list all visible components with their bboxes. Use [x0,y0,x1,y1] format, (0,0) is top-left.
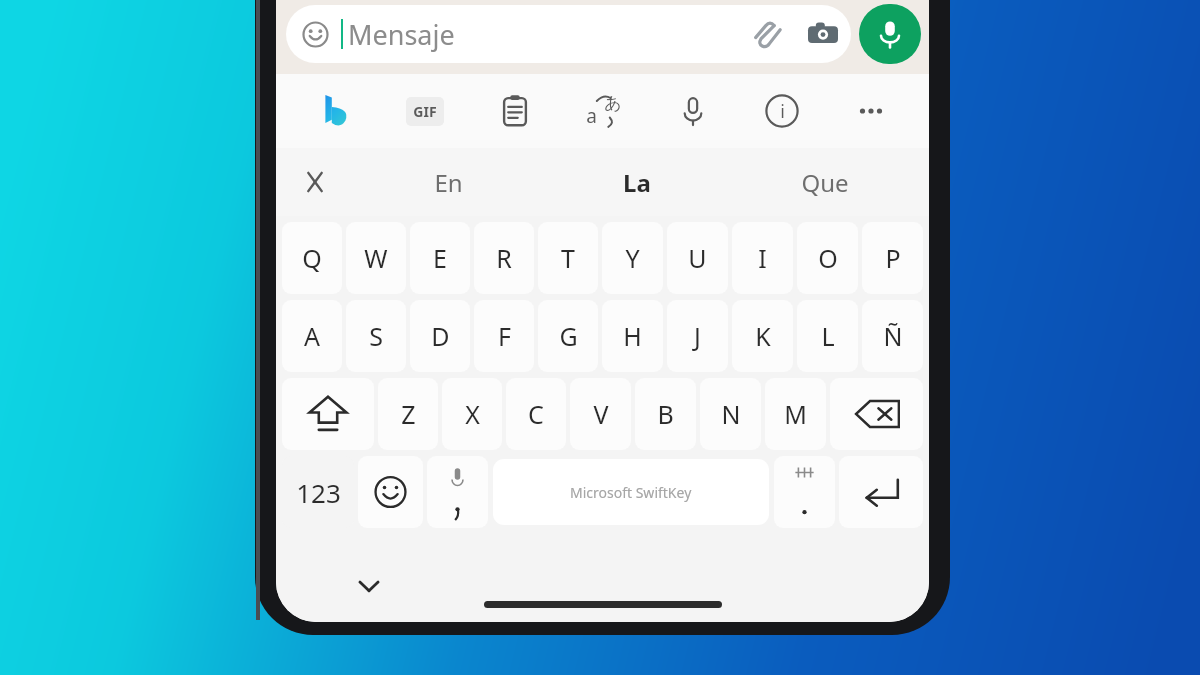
staticText: D [431,319,450,353]
button[interactable]: Voice input [648,74,737,148]
staticText: K [755,319,771,353]
button[interactable]: Hide keyboard [346,563,392,609]
staticText: X [465,397,480,431]
button[interactable]: R [474,222,534,294]
button[interactable]: En [354,148,543,216]
staticText: あ [604,93,622,114]
staticText: I [758,241,767,275]
button[interactable]: Enter [839,456,923,528]
staticText: N [721,397,741,431]
staticText: Z [401,397,416,431]
button[interactable]: Attach [745,12,789,56]
button[interactable]: B [635,378,696,450]
button[interactable]: P [862,222,923,294]
button[interactable]: F [474,300,534,372]
staticText: i [780,99,785,124]
staticText: T [561,241,575,275]
staticText: E [433,241,447,275]
button[interactable]: S [346,300,406,372]
button[interactable]: D [410,300,470,372]
button[interactable]: More options [826,74,915,148]
staticText: U [688,241,707,275]
staticText: Mensaje [348,16,455,53]
button[interactable]: K [732,300,793,372]
staticText: O [818,241,838,275]
button[interactable]: Que [731,148,919,216]
button[interactable]: Collapse [276,148,354,216]
button[interactable]: Voice message [859,4,921,64]
staticText: En [434,166,463,199]
button[interactable]: 123 [282,456,354,528]
button[interactable]: Bing [290,74,380,148]
staticText: H [623,319,642,353]
button[interactable]: Translator [559,74,648,148]
button[interactable]: T [538,222,598,294]
button[interactable]: GIF [380,74,470,148]
button[interactable]: La [543,148,731,216]
staticText: W [364,241,388,275]
button[interactable]: G [538,300,598,372]
button[interactable]: C [506,378,566,450]
staticText: 123 [296,475,341,510]
button[interactable]: V [570,378,631,450]
button[interactable]: Emoji [358,456,423,528]
button[interactable]: Comma [427,456,488,528]
staticText: S [369,319,383,353]
button[interactable]: Ñ [862,300,923,372]
button[interactable]: E [410,222,470,294]
staticText: M [784,397,807,431]
button[interactable]: A [282,300,342,372]
button[interactable]: I [732,222,793,294]
staticText: V [593,397,609,431]
staticText: A [304,319,320,353]
button[interactable]: Z [378,378,438,450]
staticText: a [586,103,597,129]
button[interactable]: Mensaje [286,5,851,63]
button[interactable]: Period [774,456,835,528]
button[interactable]: Info [737,74,826,148]
staticText: Q [302,241,322,275]
staticText: Microsoft SwiftKey [570,483,692,502]
staticText: GIF [413,102,437,121]
staticText: B [657,397,674,431]
staticText: C [528,397,544,431]
staticText: G [559,319,578,353]
button[interactable]: M [765,378,826,450]
staticText: F [498,319,511,353]
staticText: Y [625,241,640,275]
staticText: P [885,241,901,275]
button[interactable]: Y [602,222,663,294]
staticText: Que [801,166,849,199]
button[interactable]: Shift [282,378,374,450]
button[interactable]: Backspace [830,378,923,450]
button[interactable]: J [667,300,728,372]
staticText: Ñ [883,319,903,353]
button[interactable]: W [346,222,406,294]
staticText: J [694,319,701,353]
button[interactable]: U [667,222,728,294]
button[interactable]: O [797,222,858,294]
button[interactable]: Microsoft SwiftKey [493,459,769,525]
button[interactable]: X [442,378,502,450]
staticText: R [496,241,512,275]
button[interactable]: Clipboard [470,74,559,148]
button[interactable]: L [797,300,858,372]
staticText: L [821,319,835,353]
button[interactable]: Camera [801,12,845,56]
button[interactable]: Q [282,222,342,294]
button[interactable]: N [700,378,761,450]
button[interactable]: H [602,300,663,372]
staticText: La [623,166,651,199]
